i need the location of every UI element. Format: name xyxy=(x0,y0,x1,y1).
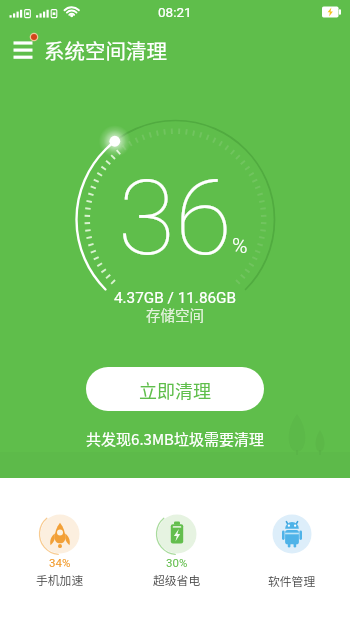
button[interactable]: 软件管理 xyxy=(252,509,332,594)
staticText: 软件管理 xyxy=(268,572,316,589)
staticText: 36 xyxy=(118,158,232,280)
staticText: 共发现6.3MB垃圾需要清理 xyxy=(0,428,350,450)
staticText: 34% xyxy=(49,556,71,569)
staticText: 超级省电 xyxy=(153,571,201,588)
staticText: 30% xyxy=(166,556,188,569)
button[interactable]: 立即清理 xyxy=(86,367,264,411)
staticText: 08:21 xyxy=(158,4,192,20)
button[interactable]: Menu xyxy=(8,33,40,65)
staticText: % xyxy=(232,234,248,259)
staticText: 4.37GB / 11.86GB xyxy=(0,289,350,307)
staticText: 存储空间 xyxy=(0,304,350,325)
staticText: 系统空间清理 xyxy=(44,35,167,65)
staticText: 手机加速 xyxy=(36,571,84,588)
staticText: 立即清理 xyxy=(139,377,211,403)
button[interactable]: 30% xyxy=(137,509,217,594)
button[interactable]: 34% xyxy=(20,509,100,594)
